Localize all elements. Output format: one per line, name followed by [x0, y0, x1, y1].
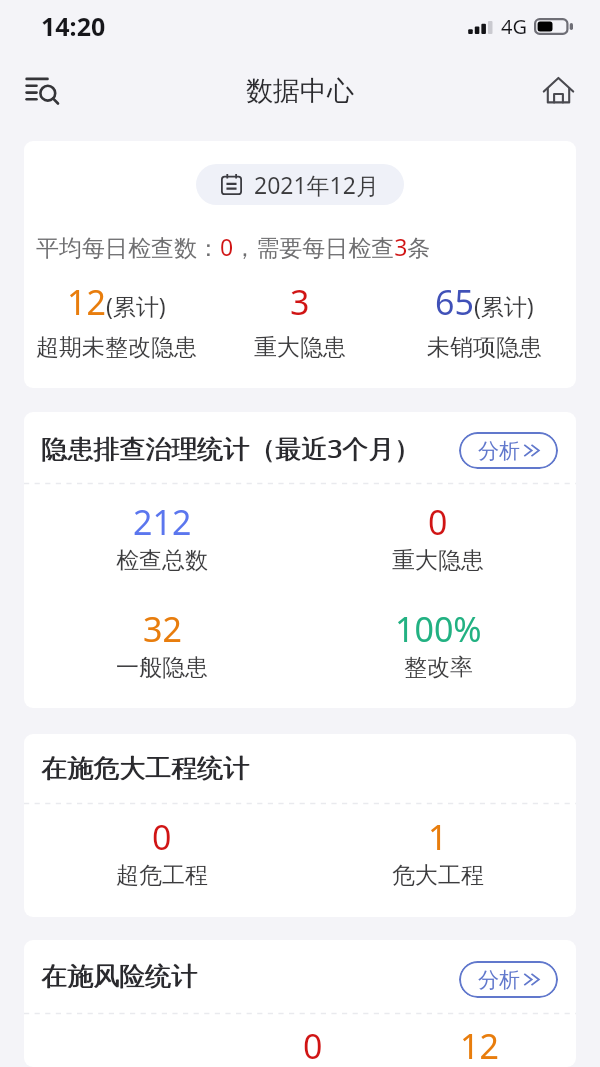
- staticText: 0: [428, 499, 448, 545]
- button[interactable]: 212: [24, 499, 300, 575]
- staticText: 在施风险统计: [42, 960, 198, 993]
- button[interactable]: 12: [396, 1023, 562, 1067]
- staticText: 在施风险统计: [41, 960, 197, 993]
- staticText: 超危工程: [116, 861, 208, 890]
- button[interactable]: 3: [208, 279, 392, 362]
- staticText: 一般隐患: [116, 653, 208, 682]
- button[interactable]: 0: [230, 1023, 396, 1067]
- button[interactable]: Home: [532, 65, 584, 117]
- staticText: 整改率: [404, 653, 473, 682]
- button[interactable]: 2021年12月: [196, 164, 404, 205]
- button[interactable]: 100%: [300, 606, 576, 682]
- staticText: 32: [143, 606, 182, 652]
- button[interactable]: 0: [300, 499, 576, 575]
- staticText: 危大工程: [392, 861, 484, 890]
- staticText: 12(累计): [67, 279, 166, 325]
- staticText: 3: [290, 279, 310, 325]
- button[interactable]: 分析: [459, 432, 558, 469]
- staticText: 数据中心: [246, 74, 354, 108]
- staticText: 在施危大工程统计: [41, 752, 249, 785]
- staticText: 重大隐患: [254, 333, 346, 362]
- staticText: 检查总数: [116, 546, 208, 575]
- staticText: 未销项隐患: [427, 333, 542, 362]
- staticText: 超期未整改隐患: [36, 333, 197, 362]
- button[interactable]: Search: [16, 65, 68, 117]
- button[interactable]: 1: [300, 814, 576, 890]
- staticText: 0: [303, 1023, 323, 1067]
- staticText: 隐患排查治理统计（最近3个月）: [41, 430, 420, 466]
- button[interactable]: 分析: [459, 961, 558, 998]
- staticText: 1: [428, 814, 448, 860]
- staticText: 14:20: [41, 9, 106, 43]
- staticText: 12: [460, 1023, 499, 1067]
- button[interactable]: 65(累计): [392, 279, 576, 362]
- staticText: 隐患排查治理统计（最近3个月）: [42, 430, 421, 466]
- staticText: 重大隐患: [392, 546, 484, 575]
- button[interactable]: 0: [24, 814, 300, 890]
- staticText: 4G: [501, 13, 527, 40]
- staticText: 2021年12月: [254, 169, 379, 200]
- button[interactable]: 32: [24, 606, 300, 682]
- staticText: 65(累计): [435, 279, 534, 325]
- staticText: 100%: [395, 606, 482, 652]
- staticText: 分析: [478, 967, 520, 993]
- staticText: 在施危大工程统计: [42, 752, 250, 785]
- button[interactable]: 12(累计): [24, 279, 208, 362]
- staticText: 0: [152, 814, 172, 860]
- staticText: 平均每日检查数：0，需要每日检查3条: [36, 231, 431, 262]
- staticText: 分析: [478, 438, 520, 464]
- staticText: 212: [133, 499, 192, 545]
